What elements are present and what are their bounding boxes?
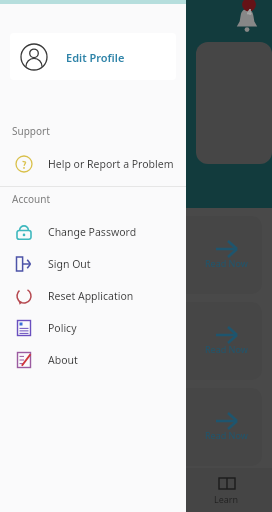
staticText: Support	[12, 124, 50, 138]
staticText: Sign Out	[48, 257, 91, 271]
button[interactable]: Read Now	[10, 216, 262, 294]
button[interactable]: Help or Report a Problem	[0, 148, 186, 180]
staticText: Help or Report a Problem	[48, 157, 174, 171]
staticText: Account	[12, 192, 51, 206]
button[interactable]: Read Now	[10, 302, 262, 380]
button[interactable]: Reset Application	[0, 280, 186, 312]
staticText: 4	[247, 6, 252, 17]
button[interactable]: Notifications	[232, 4, 262, 34]
staticText: Change Password	[48, 225, 137, 239]
staticText: Read Now	[205, 257, 248, 269]
staticText: About	[48, 353, 78, 367]
button[interactable]: Read Now	[10, 388, 262, 466]
button[interactable]: Edit Profile	[10, 33, 176, 80]
button[interactable]: About	[0, 344, 186, 376]
staticText: Edit Profile	[66, 50, 125, 65]
button[interactable]: Policy	[0, 312, 186, 344]
button[interactable]: Learn	[181, 468, 272, 512]
button[interactable]: Change Password	[0, 216, 186, 248]
staticText: Learn	[214, 493, 239, 505]
staticText: Reset Application	[48, 289, 134, 303]
staticText: Read Now	[205, 429, 248, 441]
staticText: Read Now	[205, 343, 248, 355]
button[interactable]: Mushroom	[14, 42, 184, 164]
button[interactable]: Sign Out	[0, 248, 186, 280]
button[interactable]	[196, 42, 272, 164]
staticText: Policy	[48, 321, 77, 335]
